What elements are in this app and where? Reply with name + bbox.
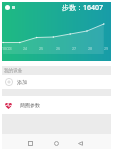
- button[interactable]: Back: [73, 136, 88, 150]
- staticText: 我的设备: [4, 68, 23, 74]
- staticText: 添加: [17, 79, 27, 85]
- staticText: 25: [39, 46, 44, 51]
- staticText: 24: [23, 46, 28, 51]
- staticText: 28: [88, 46, 93, 51]
- button[interactable]: Home: [49, 136, 64, 150]
- button[interactable]: 添加: [2, 75, 111, 89]
- staticText: 29: [104, 46, 109, 51]
- staticText: 10/23: [2, 46, 12, 51]
- button[interactable]: Recents: [23, 136, 38, 150]
- button[interactable]: 两圈参数: [2, 96, 111, 114]
- staticText: 26: [56, 46, 61, 51]
- staticText: 27: [72, 46, 77, 51]
- staticText: 两圈参数: [20, 102, 40, 108]
- staticText: 步数：16407: [62, 3, 104, 13]
